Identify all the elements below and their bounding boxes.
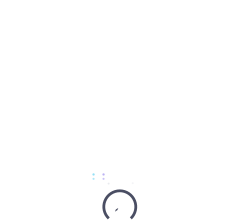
button[interactable]: Gauge bbox=[102, 189, 138, 220]
